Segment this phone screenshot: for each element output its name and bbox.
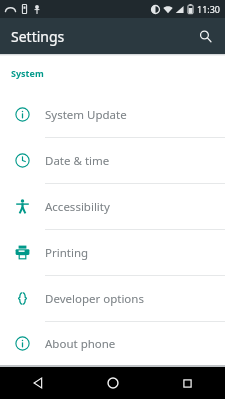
button[interactable]: About phone	[0, 322, 225, 365]
staticText: Printing	[45, 245, 89, 261]
button[interactable]: Date & time	[0, 138, 225, 183]
button[interactable]: Printing	[0, 230, 225, 275]
staticText: System Update	[45, 107, 127, 123]
button[interactable]: System Update	[0, 92, 225, 137]
button[interactable]: Recent apps	[150, 367, 225, 399]
button[interactable]: Back	[0, 367, 75, 399]
button[interactable]: Developer options	[0, 276, 225, 321]
staticText: System	[11, 67, 44, 79]
staticText: 11:30	[197, 3, 221, 15]
staticText: About phone	[45, 336, 116, 352]
button[interactable]: Home	[75, 367, 150, 399]
staticText: Developer options	[45, 291, 144, 307]
staticText: Date & time	[45, 153, 110, 169]
staticText: Accessibility	[45, 199, 110, 215]
button[interactable]: Search	[190, 21, 220, 51]
button[interactable]: Accessibility	[0, 184, 225, 229]
staticText: Settings	[11, 27, 65, 46]
